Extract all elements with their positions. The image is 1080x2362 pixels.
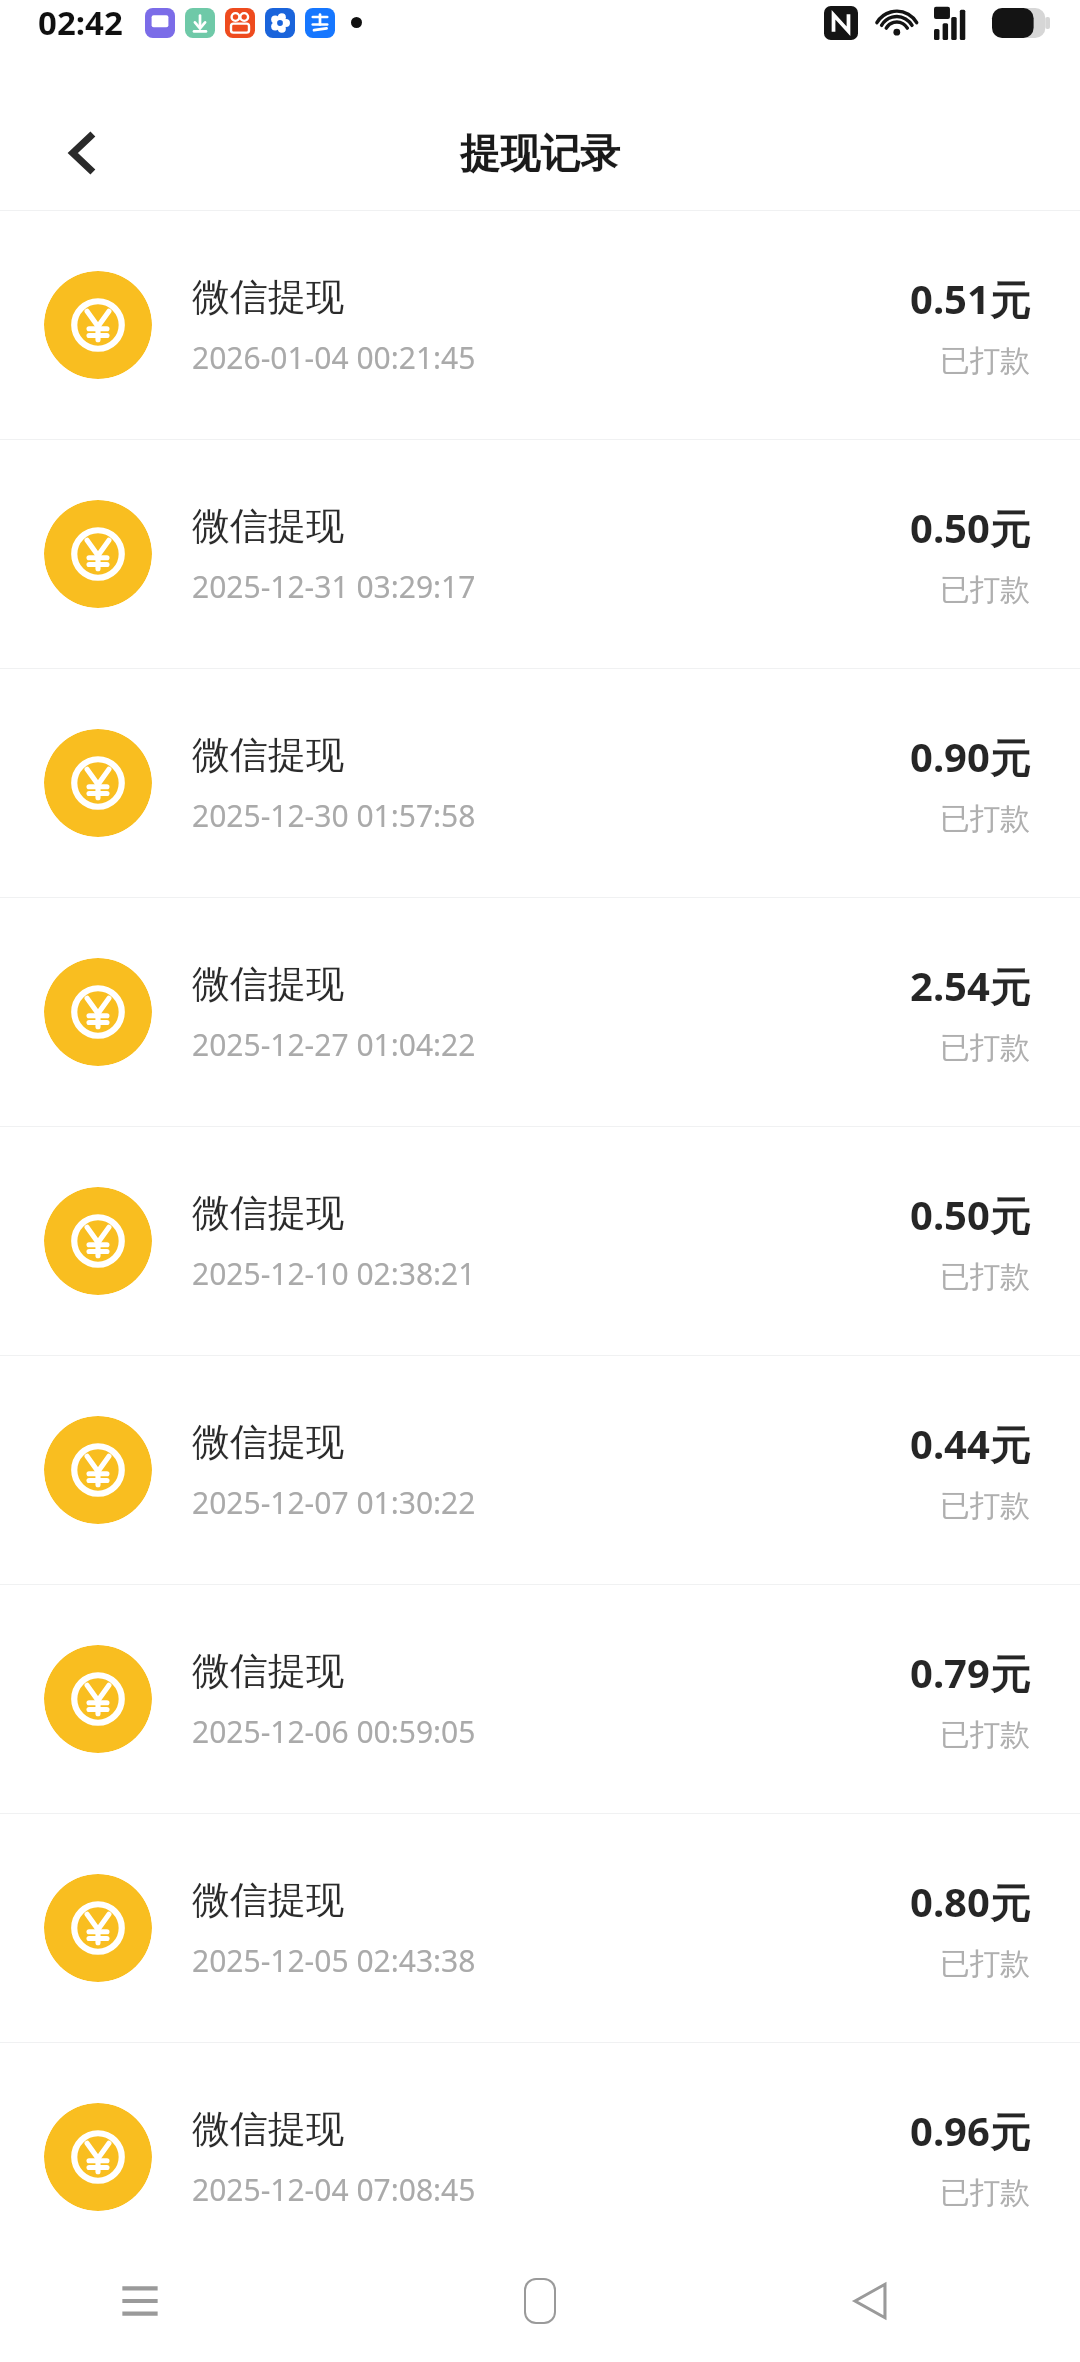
staticText: 2025-12-27 01:04:22 xyxy=(192,1024,476,1065)
button[interactable]: 微信提现 xyxy=(0,2043,1080,2271)
staticText: 2026-01-04 00:21:45 xyxy=(192,337,476,378)
staticText: 2.54元 xyxy=(910,958,1030,1013)
staticText: 0.44元 xyxy=(910,1416,1030,1471)
staticText: 2025-12-07 01:30:22 xyxy=(192,1482,476,1523)
staticText: 已打款 xyxy=(940,800,1030,838)
button[interactable]: 微信提现 xyxy=(0,898,1080,1126)
button[interactable]: Home xyxy=(490,2251,590,2351)
staticText: 微信提现 xyxy=(192,2105,344,2153)
button[interactable]: Back xyxy=(34,105,130,201)
staticText: 2025-12-04 07:08:45 xyxy=(192,2169,476,2210)
staticText: 0.51元 xyxy=(910,271,1030,326)
staticText: 微信提现 xyxy=(192,1647,344,1695)
staticText: 已打款 xyxy=(940,1716,1030,1754)
staticText: 已打款 xyxy=(940,1258,1030,1296)
staticText: 微信提现 xyxy=(192,731,344,779)
button[interactable]: 微信提现 xyxy=(0,669,1080,897)
staticText: 微信提现 xyxy=(192,1876,344,1924)
staticText: 提现记录 xyxy=(460,128,620,178)
staticText: 已打款 xyxy=(940,1945,1030,1983)
button[interactable]: Back xyxy=(820,2251,920,2351)
staticText: 2025-12-05 02:43:38 xyxy=(192,1940,476,1981)
staticText: 0.50元 xyxy=(910,500,1030,555)
staticText: 0.80元 xyxy=(910,1874,1030,1929)
staticText: 0.50元 xyxy=(910,1187,1030,1242)
staticText: 微信提现 xyxy=(192,502,344,550)
button[interactable]: 微信提现 xyxy=(0,1127,1080,1355)
button[interactable]: 微信提现 xyxy=(0,1356,1080,1584)
button[interactable]: 微信提现 xyxy=(0,440,1080,668)
staticText: 已打款 xyxy=(940,1029,1030,1067)
staticText: 微信提现 xyxy=(192,1418,344,1466)
button[interactable]: 微信提现 xyxy=(0,211,1080,439)
staticText: 0.96元 xyxy=(910,2103,1030,2158)
staticText: 02:42 xyxy=(38,0,123,45)
staticText: 微信提现 xyxy=(192,1189,344,1237)
staticText: 0.79元 xyxy=(910,1645,1030,1700)
button[interactable]: 微信提现 xyxy=(0,1814,1080,2042)
staticText: 微信提现 xyxy=(192,960,344,1008)
staticText: 2025-12-31 03:29:17 xyxy=(192,566,476,607)
staticText: 2025-12-10 02:38:21 xyxy=(192,1253,476,1294)
staticText: 0.90元 xyxy=(910,729,1030,784)
staticText: 2025-12-06 00:59:05 xyxy=(192,1711,476,1752)
staticText: 已打款 xyxy=(940,2174,1030,2212)
staticText: 已打款 xyxy=(940,1487,1030,1525)
staticText: 已打款 xyxy=(940,342,1030,380)
staticText: 已打款 xyxy=(940,571,1030,609)
button[interactable]: Recent apps xyxy=(90,2251,190,2351)
staticText: 2025-12-30 01:57:58 xyxy=(192,795,476,836)
staticText: 微信提现 xyxy=(192,273,344,321)
button[interactable]: 微信提现 xyxy=(0,1585,1080,1813)
